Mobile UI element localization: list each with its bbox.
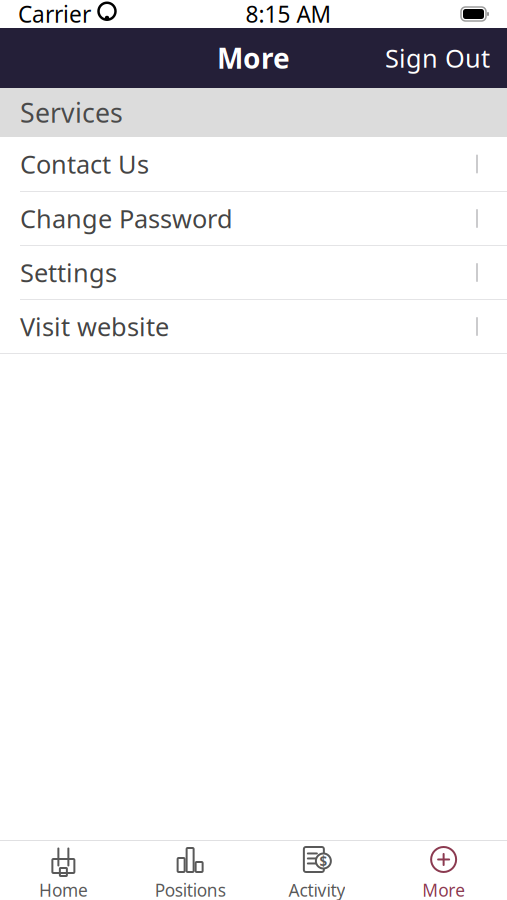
button[interactable]: Visit website: [0, 299, 507, 353]
button[interactable]: Contact Us: [0, 137, 507, 191]
button[interactable]: Home: [0, 841, 127, 900]
staticText: Activity: [288, 878, 345, 900]
staticText: 8:15 AM: [245, 0, 331, 29]
staticText: Services: [20, 95, 123, 130]
button[interactable]: More: [380, 841, 507, 900]
staticText: $: [319, 852, 327, 870]
staticText: Settings: [20, 256, 117, 289]
button[interactable]: Settings: [0, 245, 507, 299]
button[interactable]: Positions: [127, 841, 254, 900]
button[interactable]: Sign Out: [377, 31, 498, 85]
staticText: More: [422, 878, 465, 900]
staticText: Carrier: [18, 0, 91, 29]
staticText: More: [217, 39, 290, 77]
staticText: Contact Us: [20, 147, 149, 181]
button[interactable]: $: [253, 841, 380, 900]
staticText: Home: [39, 878, 88, 900]
staticText: Visit website: [20, 310, 169, 343]
staticText: Positions: [155, 878, 226, 900]
button[interactable]: Change Password: [0, 191, 507, 245]
staticText: Change Password: [20, 202, 233, 235]
staticText: Sign Out: [385, 41, 490, 75]
